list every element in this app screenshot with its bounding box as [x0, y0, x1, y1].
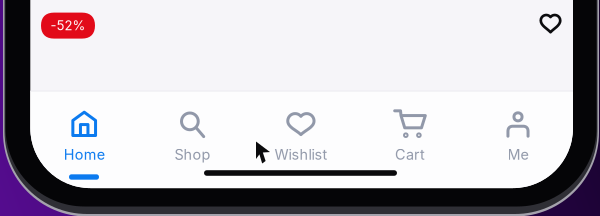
button[interactable]: Me [464, 91, 572, 188]
button[interactable]: -52% [41, 13, 95, 39]
staticText: Cart [395, 146, 425, 163]
staticText: -52% [50, 18, 85, 33]
staticText: Shop [175, 146, 211, 163]
button[interactable]: Home [30, 91, 138, 188]
staticText: Me [507, 146, 528, 163]
button[interactable]: Wishlist [247, 91, 355, 188]
button[interactable]: Shop [138, 91, 247, 188]
staticText: Home [64, 146, 105, 163]
button[interactable]: Cart [356, 91, 464, 188]
staticText: Wishlist [274, 146, 327, 163]
button[interactable]: Add to wishlist [528, 2, 572, 46]
